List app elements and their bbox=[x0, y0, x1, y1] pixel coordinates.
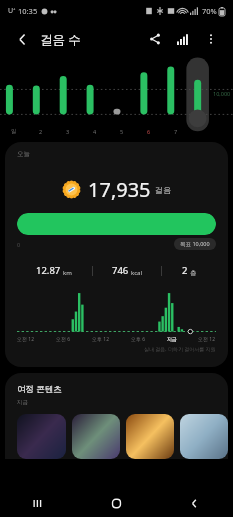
staticText: 층 bbox=[190, 269, 197, 277]
button[interactable] bbox=[126, 414, 174, 459]
staticText: 2 bbox=[39, 128, 43, 135]
staticText: 12.87 bbox=[36, 264, 61, 277]
button[interactable]: Recents bbox=[0, 490, 77, 517]
staticText: 오전 12 bbox=[198, 336, 216, 343]
button[interactable]: Chart bbox=[171, 27, 195, 51]
staticText: 일 bbox=[11, 128, 17, 135]
staticText: 실내 걸음, 더하기 걸어서를 지원 bbox=[144, 346, 216, 353]
staticText: 오전 12 bbox=[17, 336, 35, 343]
staticText: 17,935 bbox=[88, 176, 151, 203]
staticText: 10:35 bbox=[18, 6, 38, 16]
button[interactable]: More options bbox=[199, 27, 223, 51]
staticText: 목표 10,000 bbox=[180, 240, 210, 248]
button[interactable] bbox=[72, 414, 120, 459]
staticText: 10,000 bbox=[213, 90, 231, 97]
button[interactable] bbox=[17, 414, 66, 459]
staticText: km bbox=[63, 269, 72, 277]
staticText: 2 bbox=[182, 264, 188, 277]
staticText: kcal bbox=[131, 269, 142, 277]
button[interactable]: Home bbox=[77, 490, 155, 517]
staticText: 지금 bbox=[17, 399, 28, 406]
button[interactable]: Back bbox=[155, 490, 233, 517]
staticText: 4 bbox=[93, 128, 97, 135]
staticText: 오늘 bbox=[17, 150, 30, 158]
staticText: 746 bbox=[112, 264, 129, 277]
button[interactable]: Share bbox=[143, 27, 167, 51]
staticText: 오후 12 bbox=[92, 336, 110, 343]
staticText: 0 bbox=[17, 241, 21, 248]
button[interactable] bbox=[17, 213, 216, 235]
staticText: 걸음 수 bbox=[40, 31, 81, 48]
staticText: 70% bbox=[202, 6, 217, 16]
staticText: 걸음 bbox=[155, 185, 171, 195]
button[interactable] bbox=[180, 414, 228, 459]
staticText: 여정 콘텐츠 bbox=[17, 383, 62, 395]
staticText: 7 bbox=[174, 128, 178, 135]
staticText: 5 bbox=[120, 128, 124, 135]
staticText: 6 bbox=[147, 128, 151, 135]
staticText: 지금 bbox=[167, 336, 177, 342]
staticText: 3 bbox=[66, 128, 70, 135]
button[interactable]: Back bbox=[10, 27, 34, 51]
staticText: U⁺ bbox=[8, 6, 16, 16]
staticText: 오후 6 bbox=[131, 336, 146, 343]
staticText: 오전 6 bbox=[56, 336, 71, 343]
